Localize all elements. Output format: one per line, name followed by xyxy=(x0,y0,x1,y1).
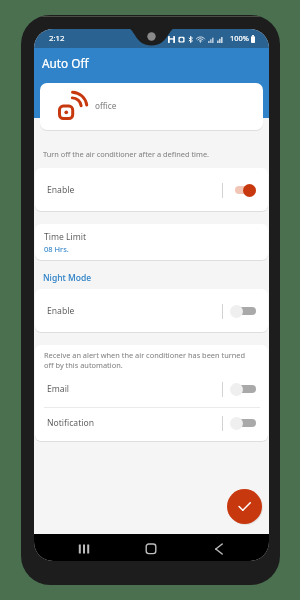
staticText: Night Mode xyxy=(43,272,92,284)
staticText: 100% xyxy=(230,33,249,43)
button[interactable]: Back xyxy=(209,539,229,556)
button[interactable]: Enable xyxy=(35,168,268,211)
staticText: 08 Hrs. xyxy=(44,244,69,254)
button[interactable]: Home xyxy=(141,539,161,556)
staticText: 2:12 xyxy=(49,33,65,44)
button[interactable]: Time Limit xyxy=(35,224,268,260)
staticText: Enable xyxy=(47,184,75,196)
button[interactable]: Confirm xyxy=(227,489,262,524)
button[interactable]: Enable xyxy=(35,289,268,332)
staticText: Notification xyxy=(47,417,94,429)
button[interactable]: Auto Off xyxy=(42,55,89,71)
staticText: Turn off the air conditioner after a def… xyxy=(43,149,210,159)
button[interactable]: Recent apps xyxy=(74,539,94,556)
staticText: Enable xyxy=(47,305,75,317)
staticText: Email xyxy=(47,383,70,395)
staticText: office xyxy=(95,100,117,111)
staticText: Time Limit xyxy=(44,231,87,243)
button[interactable]: Email xyxy=(35,374,268,403)
staticText: Receive an alert when the air conditione… xyxy=(44,350,246,370)
button[interactable]: Notification xyxy=(35,408,268,437)
